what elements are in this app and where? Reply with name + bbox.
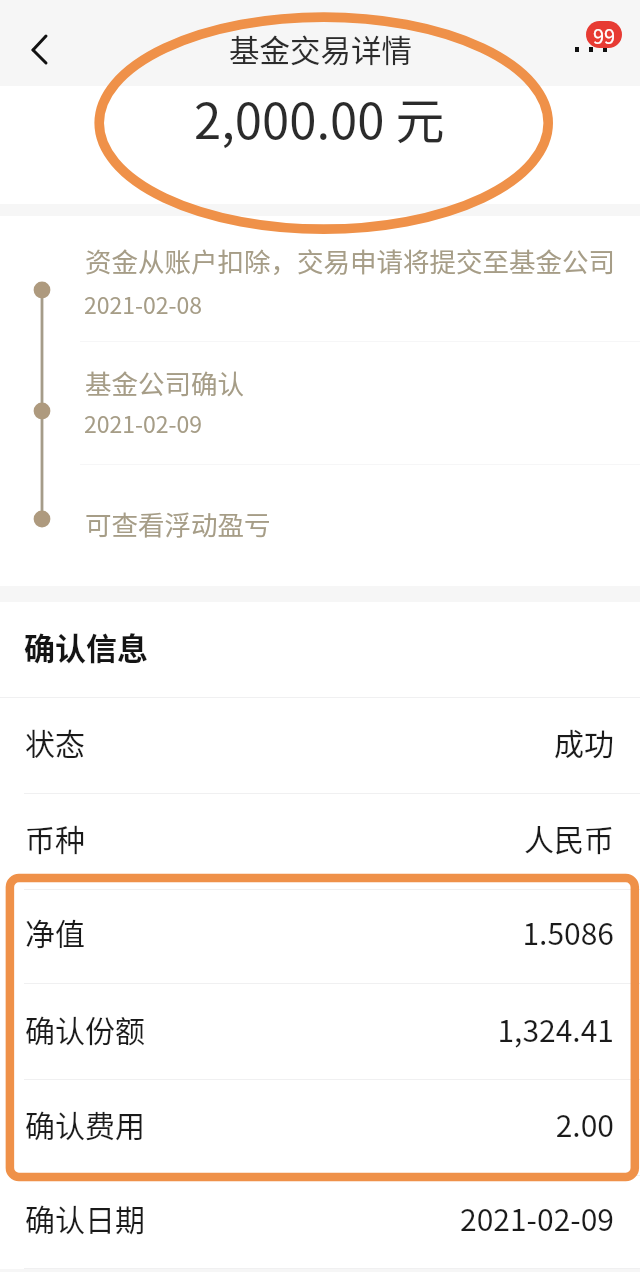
button[interactable]: 确认日期 bbox=[0, 1176, 640, 1268]
staticText: 2,000.00 元 bbox=[194, 82, 445, 153]
button[interactable]: 状态 bbox=[0, 698, 640, 793]
staticText: 确认费用 bbox=[25, 1102, 145, 1145]
staticText: 状态 bbox=[25, 720, 85, 763]
button[interactable]: 确认费用 bbox=[0, 1080, 640, 1175]
button[interactable]: 币种 bbox=[0, 794, 640, 889]
staticText: 确认信息 bbox=[24, 624, 148, 669]
staticText: 99 bbox=[593, 21, 616, 48]
staticText: 币种 bbox=[25, 816, 85, 859]
button[interactable]: 净值 bbox=[0, 890, 640, 983]
staticText: 基金公司确认 bbox=[85, 363, 244, 401]
button[interactable]: Back bbox=[8, 19, 58, 81]
staticText: 基金交易详情 bbox=[229, 27, 412, 71]
staticText: 2021-02-09 bbox=[84, 406, 203, 439]
staticText: 净值 bbox=[25, 910, 85, 953]
staticText: 1.5086 bbox=[522, 910, 614, 953]
staticText: 确认日期 bbox=[25, 1196, 145, 1239]
staticText: 确认份额 bbox=[25, 1007, 145, 1050]
staticText: 2021-02-09 bbox=[459, 1196, 614, 1239]
staticText: 1,324.41 bbox=[497, 1007, 614, 1050]
staticText: 人民币 bbox=[524, 816, 614, 859]
button[interactable]: More options bbox=[562, 0, 640, 86]
button[interactable]: 确认份额 bbox=[0, 984, 640, 1079]
staticText: 资金从账户扣除，交易申请将提交至基金公司 bbox=[85, 241, 615, 279]
staticText: 2.00 bbox=[555, 1102, 614, 1145]
staticText: 2021-02-08 bbox=[84, 287, 203, 320]
staticText: 可查看浮动盈亏 bbox=[85, 504, 271, 542]
staticText: 成功 bbox=[554, 720, 614, 763]
